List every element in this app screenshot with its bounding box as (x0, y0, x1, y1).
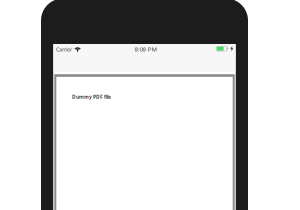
staticText: Dummy PDF file (72, 93, 111, 100)
staticText: 8:08 PM (134, 45, 156, 53)
button[interactable]: Dummy PDF file page (53, 72, 235, 210)
staticText: Carrier (56, 46, 72, 53)
